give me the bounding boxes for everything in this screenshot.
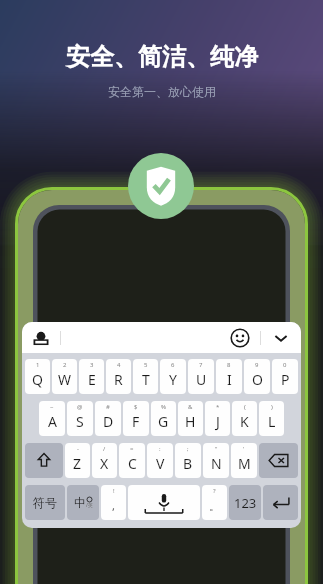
- staticText: 123: [234, 494, 257, 512]
- button[interactable]: &: [178, 401, 203, 436]
- button[interactable]: 4: [106, 359, 131, 394]
- staticText: 5: [144, 361, 148, 369]
- staticText: 。: [209, 499, 220, 513]
- staticText: H: [185, 412, 196, 431]
- staticText: (: [244, 403, 246, 411]
- button[interactable]: Emoji: [230, 328, 250, 348]
- button[interactable]: *: [205, 401, 230, 436]
- staticText: O: [252, 370, 263, 389]
- staticText: #: [106, 403, 110, 411]
- staticText: $: [134, 403, 138, 411]
- staticText: X: [100, 454, 109, 473]
- staticText: J: [216, 412, 220, 431]
- button[interactable]: 中: [67, 485, 99, 520]
- staticText: ': [243, 445, 245, 453]
- staticText: -: [77, 445, 79, 453]
- button[interactable]: 符号: [25, 485, 65, 520]
- staticText: @: [77, 403, 83, 411]
- button[interactable]: Input method settings: [30, 327, 52, 349]
- button[interactable]: 9: [244, 359, 270, 394]
- button[interactable]: ): [259, 401, 284, 436]
- button[interactable]: Security shield: [128, 153, 194, 219]
- staticText: 符号: [33, 495, 57, 510]
- staticText: V: [156, 454, 165, 473]
- staticText: ?: [213, 487, 216, 495]
- staticText: S: [76, 412, 84, 431]
- button[interactable]: ": [203, 443, 229, 478]
- button[interactable]: 8: [216, 359, 242, 394]
- button[interactable]: ;: [175, 443, 201, 478]
- button[interactable]: ?: [202, 485, 227, 520]
- button[interactable]: Space: [128, 485, 200, 520]
- staticText: %: [161, 403, 166, 411]
- staticText: 1: [36, 361, 40, 369]
- staticText: =: [130, 445, 134, 453]
- staticText: 4: [117, 361, 121, 369]
- staticText: G: [158, 412, 169, 431]
- staticText: 8: [227, 361, 231, 369]
- staticText: 中: [74, 495, 86, 510]
- button[interactable]: $: [123, 401, 149, 436]
- staticText: ;: [187, 445, 189, 453]
- button[interactable]: #: [95, 401, 121, 436]
- staticText: M: [238, 454, 251, 473]
- button[interactable]: -: [65, 443, 90, 478]
- button[interactable]: !: [101, 485, 126, 520]
- staticText: D: [103, 412, 114, 431]
- staticText: !: [113, 487, 115, 495]
- staticText: Y: [169, 370, 177, 389]
- button[interactable]: 0: [272, 359, 298, 394]
- staticText: T: [142, 370, 150, 389]
- staticText: N: [211, 454, 222, 473]
- staticText: U: [196, 370, 207, 389]
- staticText: F: [132, 412, 140, 431]
- staticText: /英: [86, 502, 93, 509]
- staticText: E: [88, 370, 96, 389]
- staticText: L: [268, 412, 276, 431]
- staticText: R: [114, 370, 123, 389]
- button[interactable]: Shift: [25, 443, 63, 478]
- button[interactable]: %: [151, 401, 176, 436]
- button[interactable]: :: [147, 443, 173, 478]
- button[interactable]: 1: [25, 359, 50, 394]
- button[interactable]: 7: [188, 359, 214, 394]
- button[interactable]: /: [92, 443, 117, 478]
- staticText: ": [215, 445, 218, 453]
- staticText: 7: [199, 361, 203, 369]
- staticText: Q: [32, 370, 43, 389]
- staticText: 2: [63, 361, 67, 369]
- button[interactable]: (: [232, 401, 257, 436]
- button[interactable]: 6: [160, 359, 186, 394]
- button[interactable]: 123: [229, 485, 261, 520]
- staticText: 0: [283, 361, 287, 369]
- button[interactable]: 3: [79, 359, 104, 394]
- staticText: ,: [112, 498, 115, 513]
- staticText: C: [128, 454, 137, 473]
- button[interactable]: @: [67, 401, 93, 436]
- button[interactable]: 2: [52, 359, 77, 394]
- button[interactable]: ~: [39, 401, 65, 436]
- staticText: 3: [90, 361, 94, 369]
- staticText: B: [183, 454, 193, 473]
- staticText: I: [227, 370, 232, 389]
- staticText: P: [281, 370, 290, 389]
- staticText: :: [159, 445, 161, 453]
- staticText: *: [216, 403, 220, 411]
- staticText: 9: [255, 361, 259, 369]
- staticText: 安全、简洁、纯净: [66, 42, 258, 72]
- button[interactable]: Backspace: [259, 443, 298, 478]
- staticText: Z: [73, 454, 82, 473]
- staticText: A: [48, 412, 57, 431]
- button[interactable]: Hide keyboard: [271, 328, 291, 348]
- staticText: 6: [171, 361, 175, 369]
- staticText: W: [58, 370, 72, 389]
- staticText: ): [271, 403, 273, 411]
- button[interactable]: ': [231, 443, 257, 478]
- button[interactable]: Enter: [263, 485, 298, 520]
- staticText: K: [240, 412, 249, 431]
- button[interactable]: 5: [133, 359, 158, 394]
- button[interactable]: =: [119, 443, 145, 478]
- staticText: /: [103, 445, 106, 453]
- staticText: &: [188, 403, 193, 411]
- staticText: ~: [50, 403, 54, 411]
